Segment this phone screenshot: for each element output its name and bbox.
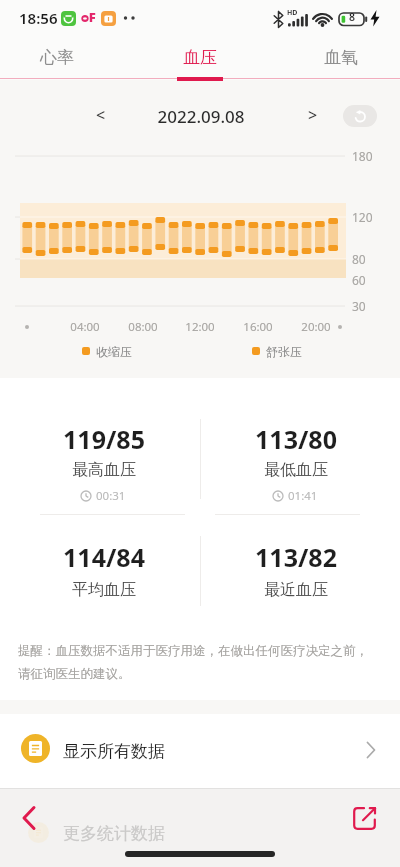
button[interactable] <box>343 105 377 127</box>
staticText: 18:56 <box>19 8 58 28</box>
staticText: 最近血压 <box>264 580 328 600</box>
button[interactable]: 显示所有数据 <box>0 714 400 788</box>
button[interactable]: < <box>86 98 116 132</box>
staticText: 心率 <box>40 47 74 68</box>
staticText: 提醒：血压数据不适用于医疗用途，在做出任何医疗决定之前， <box>18 643 368 659</box>
staticText: 请征询医生的建议。 <box>18 666 131 682</box>
staticText: < <box>96 104 106 126</box>
staticText: > <box>308 104 318 126</box>
staticText: 113/82 <box>255 540 337 574</box>
staticText: 30 <box>352 298 366 314</box>
staticText: 2022.09.08 <box>157 105 245 128</box>
button[interactable] <box>10 798 48 838</box>
button[interactable]: 血氧 <box>301 40 381 74</box>
staticText: 最高血压 <box>72 460 136 480</box>
button[interactable]: 心率 <box>17 40 97 74</box>
staticText: 113/80 <box>255 422 337 456</box>
staticText: 12:00 <box>185 319 215 335</box>
staticText: 20:00 <box>301 319 331 335</box>
staticText: 平均血压 <box>72 580 136 600</box>
button[interactable]: > <box>298 98 328 132</box>
staticText: 00:31 <box>96 488 126 504</box>
staticText: 更多统计数据 <box>63 823 165 844</box>
staticText: 04:00 <box>70 319 100 335</box>
staticText: 8 <box>349 10 356 24</box>
staticText: 最低血压 <box>264 460 328 480</box>
staticText: 显示所有数据 <box>63 741 165 762</box>
staticText: 180 <box>352 148 373 164</box>
staticText: 血压 <box>183 47 217 68</box>
button[interactable] <box>346 800 384 836</box>
button[interactable]: 血压 <box>160 40 240 74</box>
staticText: 血氧 <box>324 47 358 68</box>
staticText: 舒张压 <box>266 344 302 359</box>
staticText: 08:00 <box>128 319 158 335</box>
staticText: 01:41 <box>288 488 318 504</box>
staticText: 119/85 <box>63 422 145 456</box>
staticText: ᴑF <box>81 8 96 26</box>
staticText: 16:00 <box>243 319 273 335</box>
staticText: 收缩压 <box>96 344 132 359</box>
staticText: 60 <box>352 272 366 288</box>
staticText: 120 <box>352 209 373 225</box>
staticText: HD <box>287 8 298 18</box>
staticText: 114/84 <box>63 540 145 574</box>
staticText: 80 <box>352 251 366 267</box>
